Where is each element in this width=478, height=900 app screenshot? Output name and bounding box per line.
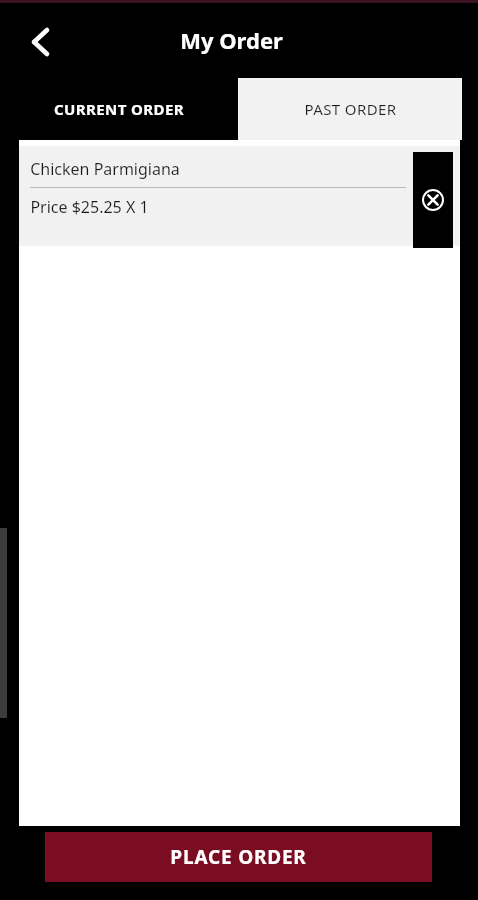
button[interactable]: CURRENT ORDER (0, 78, 238, 140)
button[interactable]: Back (18, 19, 64, 65)
button[interactable]: PLACE ORDER (45, 832, 432, 882)
staticText: PLACE ORDER (170, 844, 307, 870)
staticText: Price $25.25 X 1 (30, 196, 149, 218)
button[interactable] (19, 146, 460, 246)
staticText: Chicken Parmigiana (30, 158, 180, 180)
button[interactable]: PAST ORDER (238, 78, 462, 140)
button[interactable]: Remove item (413, 152, 453, 248)
staticText: My Order (180, 25, 283, 55)
staticText: PAST ORDER (304, 99, 397, 119)
staticText: CURRENT ORDER (54, 99, 184, 119)
